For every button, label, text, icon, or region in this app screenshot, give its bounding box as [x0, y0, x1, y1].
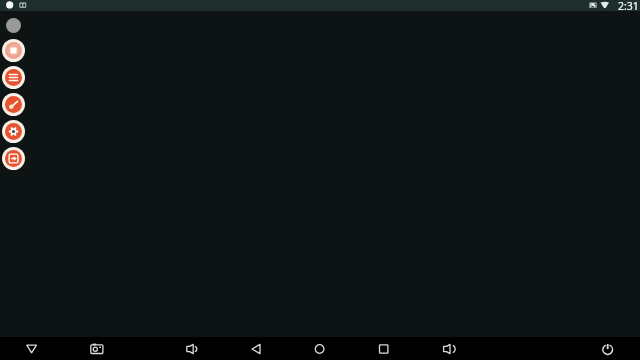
staticText: 2:31 — [618, 0, 639, 10]
button[interactable]: Volume down — [180, 337, 202, 360]
button[interactable]: Power — [597, 337, 619, 360]
button[interactable]: Recent apps — [373, 337, 395, 360]
button[interactable]: Screenshot — [86, 337, 108, 360]
button[interactable]: Profile — [6, 18, 21, 33]
button[interactable]: Collapse navigation bar — [21, 337, 43, 360]
button[interactable]: Exit — [2, 147, 25, 170]
button[interactable]: Stop — [2, 39, 25, 62]
button[interactable]: Back — [245, 337, 267, 360]
button[interactable]: Home — [309, 337, 331, 360]
button[interactable]: Settings — [2, 120, 25, 143]
button[interactable]: Menu — [2, 66, 25, 89]
button[interactable]: Brush — [2, 93, 25, 116]
button[interactable]: Volume up — [437, 337, 459, 360]
